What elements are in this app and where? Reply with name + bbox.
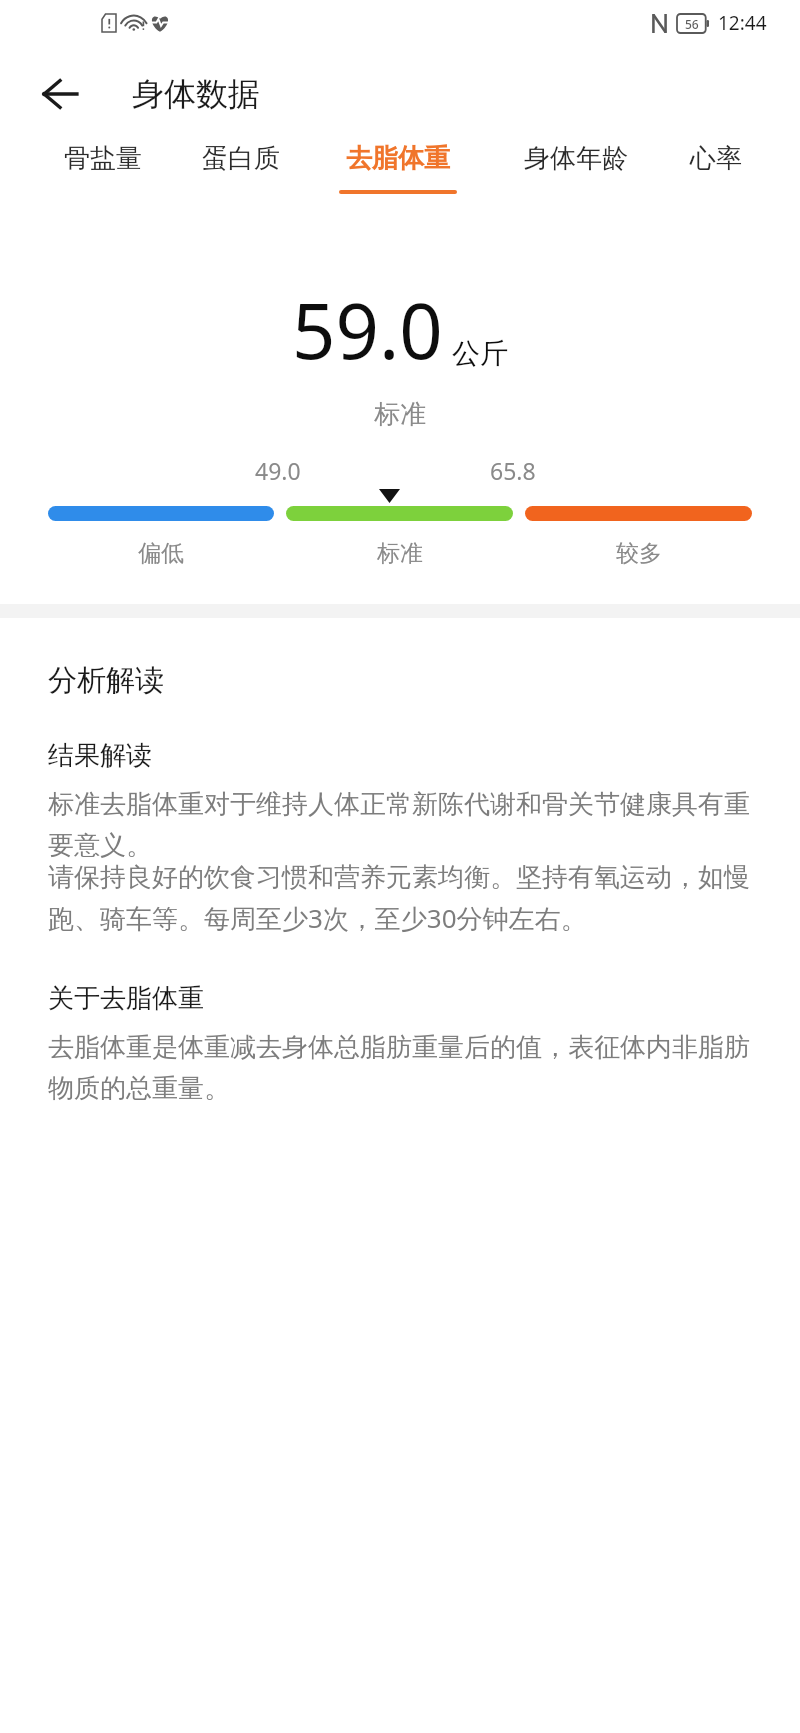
staticText: 关于去脂体重 [48, 982, 204, 1015]
staticText: 65.8 [490, 455, 536, 486]
staticText: 标准 [374, 398, 426, 431]
button[interactable]: 心率 [665, 142, 766, 175]
button[interactable]: Back [30, 64, 90, 124]
staticText: 蛋白质 [202, 142, 280, 175]
staticText: 结果解读 [48, 739, 152, 772]
button[interactable]: 去脂体重 [309, 142, 487, 194]
staticText: 身体数据 [132, 74, 260, 114]
staticText: 去脂体重是体重减去身体总脂肪重量后的值，表征体内非脂肪物质的总重量。 [48, 1031, 752, 1104]
staticText: 公斤 [452, 336, 508, 371]
staticText: 标准 [377, 539, 423, 568]
staticText: 骨盐量 [64, 142, 142, 175]
staticText: 心率 [690, 142, 742, 175]
staticText: 偏低 [138, 539, 184, 568]
staticText: 身体年龄 [524, 142, 628, 175]
staticText: 56 [685, 16, 699, 32]
staticText: 去脂体重 [346, 142, 450, 175]
staticText: 49.0 [255, 455, 301, 486]
button[interactable]: 身体年龄 [487, 142, 665, 175]
staticText: 分析解读 [48, 662, 164, 699]
button[interactable]: 蛋白质 [172, 142, 309, 175]
staticText: 请保持良好的饮食习惯和营养元素均衡。坚持有氧运动，如慢跑、骑车等。每周至少3次，… [48, 861, 752, 936]
staticText: 12:44 [718, 10, 767, 36]
button[interactable]: 骨盐量 [34, 142, 172, 175]
staticText: 59.0 [292, 278, 443, 382]
staticText: 较多 [616, 539, 662, 568]
staticText: 标准去脂体重对于维持人体正常新陈代谢和骨关节健康具有重要意义。 [48, 788, 752, 861]
